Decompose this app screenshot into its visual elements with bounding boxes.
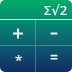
button[interactable]: Multiply [0,46,35,72]
staticText: * [15,51,23,69]
button[interactable]: Plus [0,20,35,45]
button[interactable]: Equals [36,46,72,72]
button[interactable]: Minus [36,20,72,45]
button[interactable]: Result display [0,0,72,19]
staticText: Σ√2 [44,1,68,19]
